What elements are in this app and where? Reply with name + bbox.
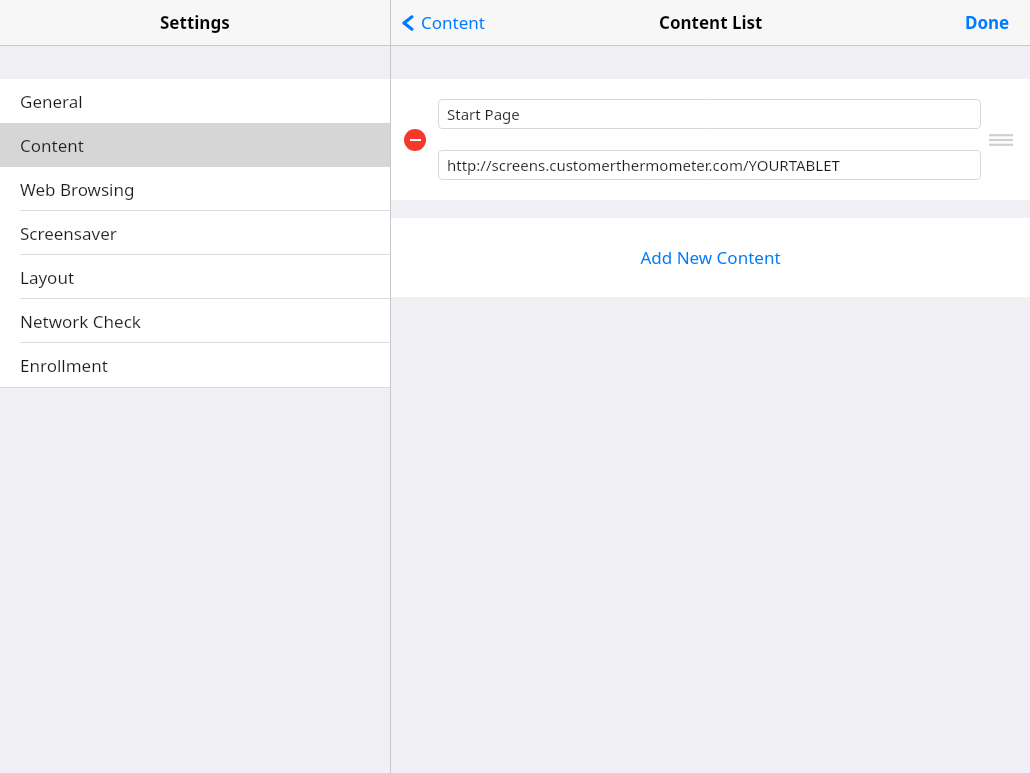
staticText: Web Browsing bbox=[20, 178, 135, 201]
staticText: Screensaver bbox=[20, 222, 117, 245]
button[interactable]: Content bbox=[0, 123, 390, 167]
button[interactable]: Start Page bbox=[438, 99, 981, 129]
button[interactable]: Delete content item bbox=[404, 129, 426, 151]
staticText: Content List bbox=[659, 11, 763, 34]
staticText: Start Page bbox=[447, 104, 520, 124]
button[interactable]: Network Check bbox=[0, 299, 390, 343]
button[interactable]: http://screens.customerthermometer.com/Y… bbox=[438, 150, 981, 180]
button[interactable]: Done bbox=[965, 11, 1010, 34]
button[interactable]: Screensaver bbox=[0, 211, 390, 255]
button[interactable]: Layout bbox=[0, 255, 390, 299]
staticText: Add New Content bbox=[640, 246, 781, 269]
button[interactable]: Add New Content bbox=[391, 218, 1030, 297]
staticText: Content bbox=[421, 11, 485, 34]
staticText: Settings bbox=[160, 11, 230, 34]
button[interactable]: Enrollment bbox=[0, 343, 390, 387]
staticText: Done bbox=[965, 11, 1010, 34]
button[interactable]: General bbox=[0, 79, 390, 123]
staticText: General bbox=[20, 90, 83, 113]
staticText: http://screens.customerthermometer.com/Y… bbox=[447, 155, 840, 175]
staticText: Network Check bbox=[20, 310, 141, 333]
button[interactable]: Web Browsing bbox=[0, 167, 390, 211]
staticText: Enrollment bbox=[20, 354, 108, 377]
button[interactable]: Content bbox=[401, 11, 485, 34]
staticText: Layout bbox=[20, 266, 75, 289]
button[interactable]: Reorder content item bbox=[986, 125, 1016, 155]
staticText: Content bbox=[20, 134, 84, 157]
